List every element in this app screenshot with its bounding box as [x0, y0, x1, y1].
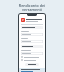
- button[interactable]: [21, 33, 43, 36]
- button[interactable]: [21, 52, 43, 55]
- button[interactable]: [25, 63, 39, 66]
- button[interactable]: [21, 45, 43, 48]
- button[interactable]: [21, 40, 43, 43]
- button[interactable]: [21, 26, 43, 29]
- button[interactable]: Checkbox: [21, 59, 43, 61]
- button[interactable]: App logo: [21, 18, 43, 22]
- staticText: Rendiconto dei versamenti: [3, 3, 61, 13]
- button[interactable]: Checkbox: [21, 56, 43, 58]
- other: App logo: [21, 18, 25, 22]
